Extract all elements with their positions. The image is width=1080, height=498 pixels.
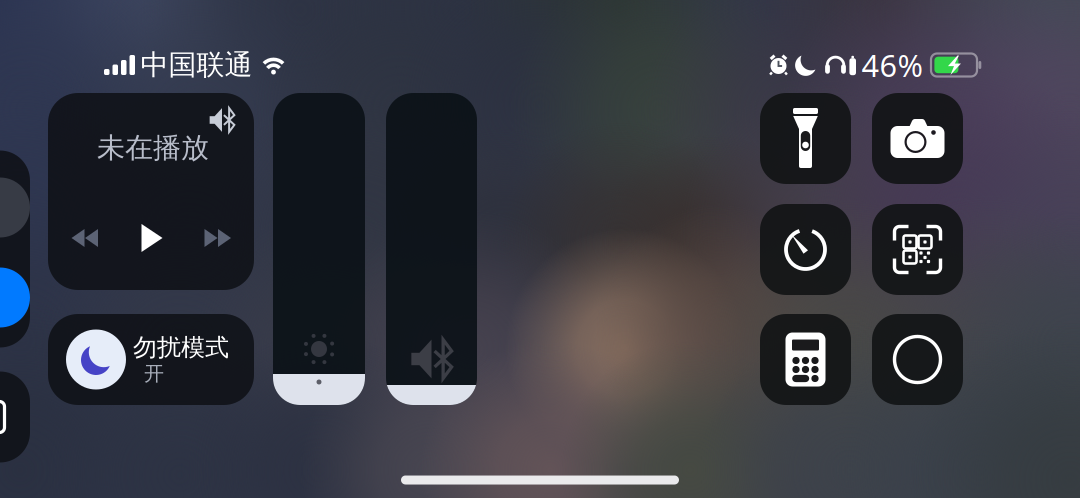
button[interactable]: Flashlight — [760, 93, 851, 184]
button[interactable]: 勿扰模式 — [48, 314, 254, 405]
button[interactable]: Screen Recording — [872, 314, 963, 405]
staticText: 勿扰模式 — [133, 333, 229, 362]
button[interactable]: Code Scanner — [872, 204, 963, 295]
button[interactable]: Brightness — [273, 93, 365, 405]
button[interactable]: Previous track — [59, 216, 111, 260]
staticText: 46% — [861, 45, 922, 85]
button[interactable]: Volume — [386, 93, 477, 405]
button[interactable]: Camera — [872, 93, 963, 184]
button[interactable]: Timer — [760, 204, 851, 295]
staticText: 中国联通 — [140, 48, 252, 82]
button[interactable]: Audio output — [202, 104, 242, 136]
button[interactable]: Next track — [192, 216, 244, 260]
staticText: 未在播放 — [97, 131, 209, 165]
button[interactable]: Calculator — [760, 314, 851, 405]
button[interactable]: Play — [126, 216, 178, 260]
staticText: 开 — [144, 361, 164, 386]
